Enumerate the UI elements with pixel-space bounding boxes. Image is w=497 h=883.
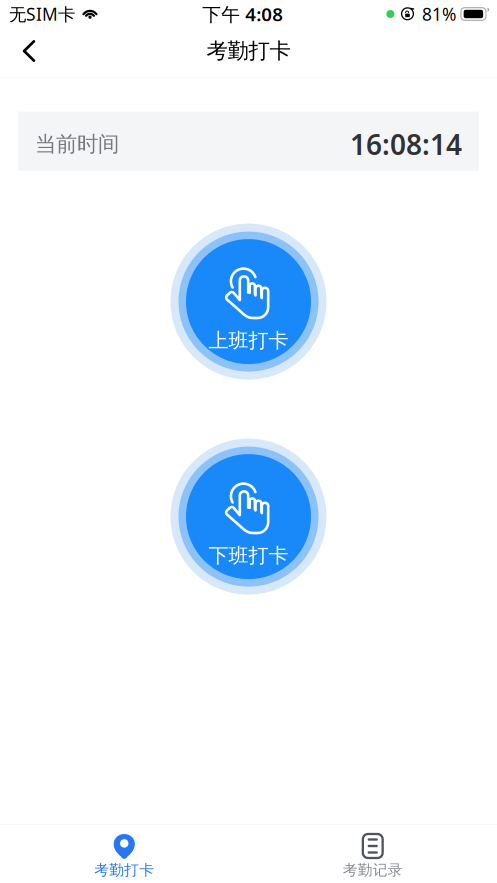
button[interactable]: 考勤记录 xyxy=(248,825,497,883)
staticText: 上班打卡 xyxy=(208,328,288,353)
staticText: 考勤记录 xyxy=(343,861,403,879)
button[interactable]: 考勤打卡 xyxy=(0,825,248,883)
staticText: 无SIM卡 xyxy=(9,2,75,25)
staticText: 考勤打卡 xyxy=(94,861,154,879)
button[interactable]: 上班打卡 xyxy=(170,224,326,380)
staticText: 下午 4:08 xyxy=(202,2,283,26)
button[interactable]: 返回 xyxy=(0,29,52,75)
staticText: 16:08:14 xyxy=(350,125,462,163)
staticText: 当前时间 xyxy=(35,131,119,157)
staticText: 81% xyxy=(422,2,456,25)
button[interactable]: 下班打卡 xyxy=(170,439,326,595)
staticText: 考勤打卡 xyxy=(206,38,290,64)
staticText: 下班打卡 xyxy=(208,543,288,568)
